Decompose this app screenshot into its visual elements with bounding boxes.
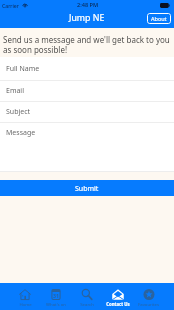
button[interactable]: Favourites	[133, 283, 164, 310]
button[interactable]: About	[147, 13, 171, 24]
staticText: Jump NE	[69, 12, 105, 24]
button[interactable]: Email	[0, 81, 174, 101]
staticText: Send us a message and we'll get back to …	[3, 34, 173, 55]
button[interactable]: Search	[71, 283, 102, 310]
staticText: Contact Us	[106, 301, 130, 307]
button[interactable]: Subject	[0, 102, 174, 122]
staticText: Full Name	[6, 64, 40, 74]
button[interactable]: Contact Us	[102, 283, 133, 310]
staticText: 2:48 PM	[77, 1, 99, 9]
staticText: Home	[19, 301, 32, 307]
staticText: What's on	[46, 301, 66, 307]
staticText: Message	[6, 128, 36, 138]
staticText: Submit	[75, 184, 99, 194]
button[interactable]: What's on	[40, 283, 71, 310]
button[interactable]: Full Name	[0, 57, 174, 80]
staticText: Carrier	[2, 2, 19, 9]
staticText: Email	[6, 86, 24, 96]
button[interactable]: Submit	[0, 180, 174, 196]
staticText: Search	[80, 301, 94, 307]
staticText: About	[151, 15, 167, 22]
staticText: Subject	[6, 107, 31, 117]
staticText: 31	[53, 292, 59, 299]
button[interactable]: Home	[10, 283, 40, 310]
staticText: Favourites	[138, 301, 159, 307]
